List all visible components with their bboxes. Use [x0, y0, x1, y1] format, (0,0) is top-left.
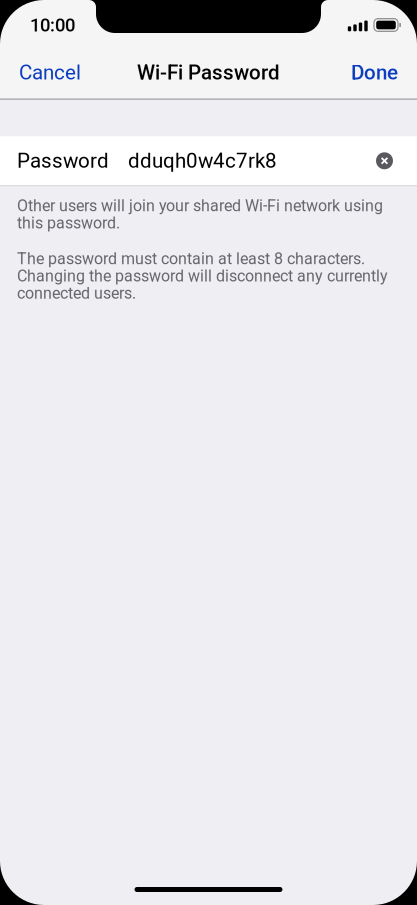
staticText: The password must contain at least 8 cha…	[17, 249, 388, 302]
staticText: Other users will join your shared Wi-Fi …	[17, 196, 383, 232]
button[interactable]: Cancel	[0, 47, 100, 98]
staticText: Wi-Fi Password	[137, 60, 280, 85]
staticText: Cancel	[19, 60, 81, 85]
staticText: dduqh0w4c7rk8	[128, 149, 277, 173]
staticText: Done	[351, 60, 398, 85]
button[interactable]: Clear text	[376, 152, 393, 169]
staticText: Password	[17, 149, 109, 173]
staticText: 10:00	[30, 14, 75, 36]
button[interactable]: Done	[332, 47, 417, 98]
